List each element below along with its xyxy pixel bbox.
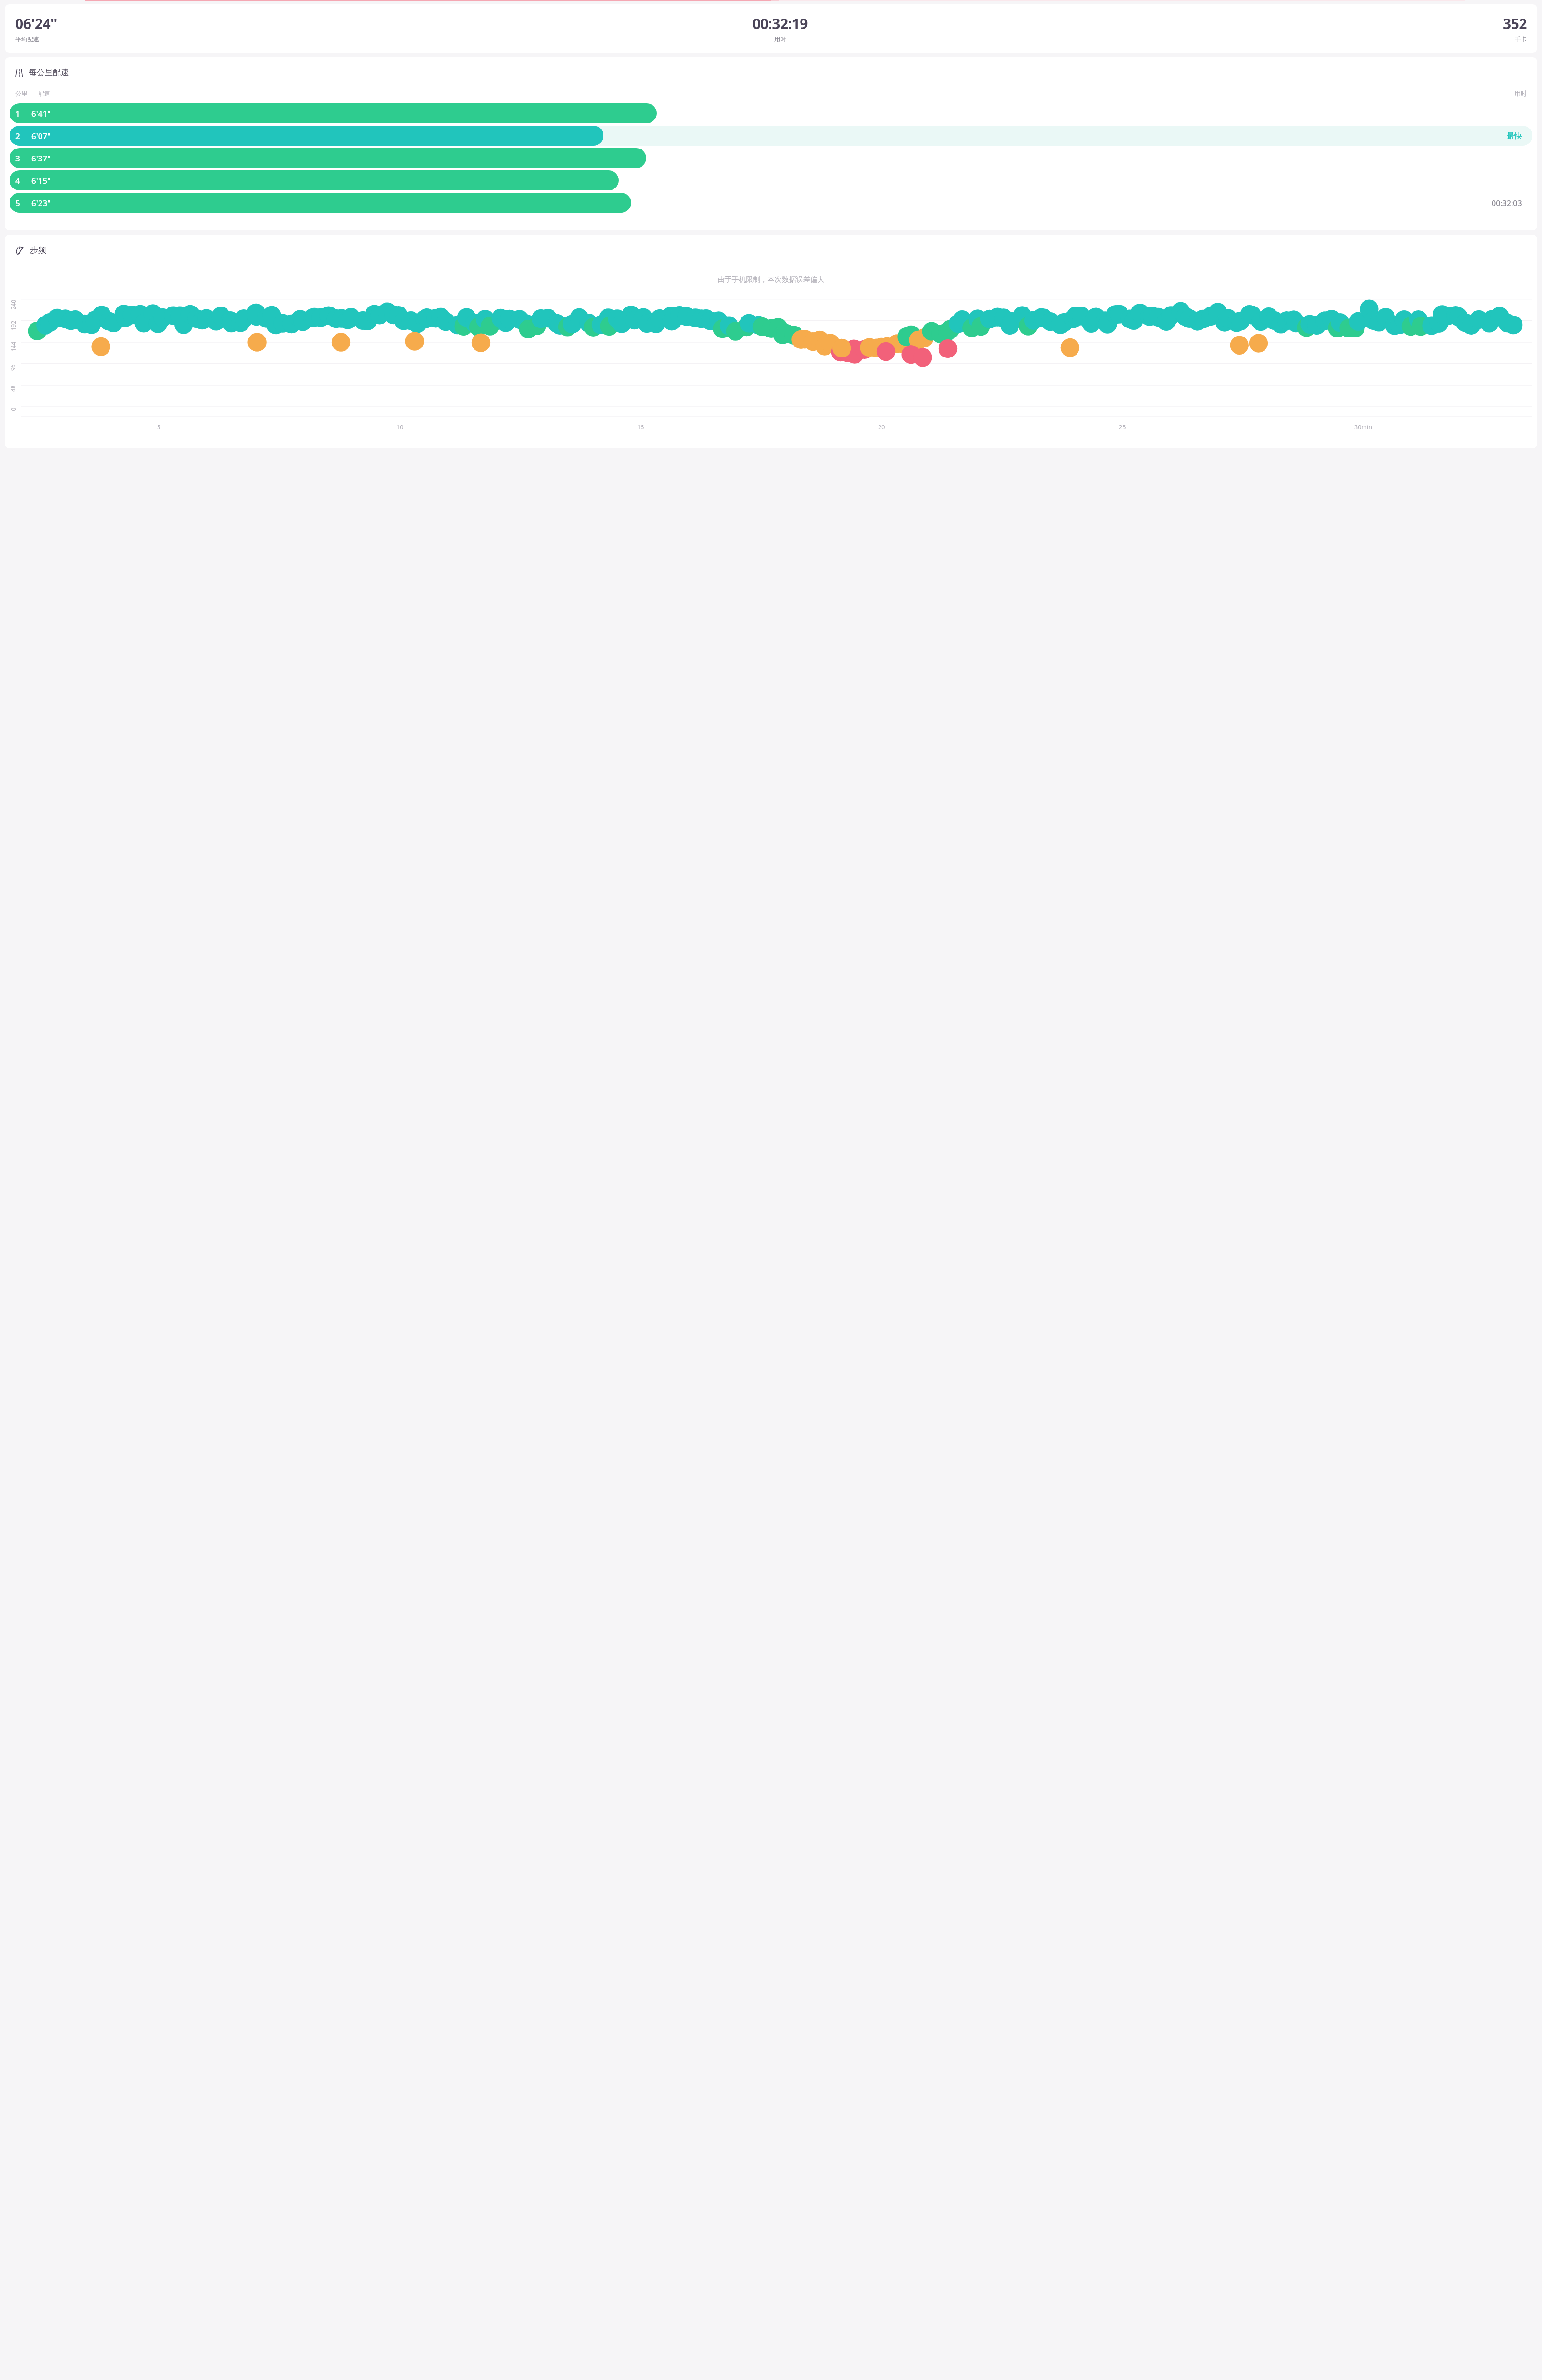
button[interactable]: 2: [10, 126, 1532, 146]
staticText: 25: [1119, 423, 1126, 431]
staticText: 240: [9, 300, 17, 310]
staticText: 15: [637, 423, 644, 431]
staticText: 6'07": [31, 130, 51, 141]
button[interactable]: Road: [5, 57, 1537, 230]
staticText: 30min: [1354, 423, 1372, 431]
other: Road: [15, 69, 23, 77]
staticText: 6'23": [31, 198, 51, 208]
staticText: 00:32:19: [752, 14, 808, 33]
staticText: 48: [9, 385, 17, 392]
staticText: 4: [15, 175, 20, 186]
staticText: 公里: [15, 89, 28, 97]
staticText: 1: [15, 108, 20, 119]
staticText: 352: [1503, 14, 1527, 33]
staticText: 96: [9, 364, 17, 371]
other: Cadence: [15, 246, 24, 255]
staticText: 配速: [38, 89, 50, 97]
staticText: 2: [15, 130, 20, 141]
staticText: 步频: [30, 245, 46, 255]
staticText: 用时: [1514, 89, 1527, 97]
staticText: 每公里配速: [29, 68, 69, 78]
button[interactable]: 3: [10, 148, 1532, 168]
staticText: 平均配速: [15, 36, 39, 43]
staticText: 20: [878, 423, 885, 431]
staticText: 最快: [1507, 131, 1522, 141]
staticText: 5: [15, 198, 20, 208]
button[interactable]: 1: [10, 103, 1532, 123]
button[interactable]: 4: [10, 170, 1532, 190]
staticText: 06'24": [15, 14, 57, 33]
staticText: 6'15": [31, 175, 51, 186]
staticText: 00:32:03: [1492, 198, 1522, 208]
staticText: 6'37": [31, 153, 51, 164]
staticText: 5: [157, 423, 161, 431]
staticText: 由于手机限制，本次数据误差偏大: [5, 275, 1537, 284]
staticText: 0: [9, 408, 17, 411]
button[interactable]: Cadence: [5, 235, 1537, 448]
staticText: 3: [15, 153, 20, 164]
button[interactable]: 5: [10, 193, 1532, 213]
staticText: 10: [396, 423, 404, 431]
staticText: 用时: [774, 36, 786, 43]
staticText: 192: [9, 321, 17, 331]
staticText: 千卡: [1515, 36, 1527, 43]
staticText: 6'41": [31, 108, 51, 119]
staticText: 144: [9, 342, 17, 352]
button[interactable]: 06'24": [5, 4, 1537, 53]
